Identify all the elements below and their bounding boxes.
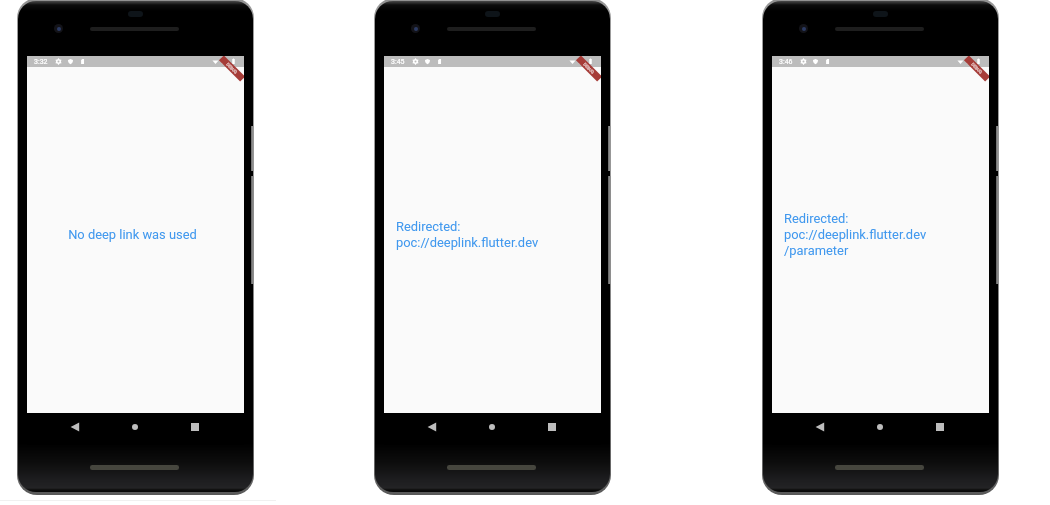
button[interactable]: Back — [798, 417, 842, 437]
button[interactable]: Home — [113, 417, 157, 437]
staticText: DEBUG — [225, 62, 239, 75]
staticText: 3:46 — [779, 58, 793, 66]
staticText: 3:32 — [34, 58, 48, 66]
staticText: DEBUG — [582, 62, 596, 75]
staticText: 3:45 — [391, 58, 405, 66]
button[interactable]: Home — [858, 417, 902, 437]
button[interactable]: Back — [410, 417, 454, 437]
button[interactable]: Recents — [918, 417, 962, 437]
staticText: Redirected: poc://deeplink.flutter.dev — [396, 219, 539, 250]
staticText: DEBUG — [970, 62, 984, 75]
staticText: No deep link was used — [68, 227, 197, 242]
button[interactable]: Home — [470, 417, 514, 437]
button[interactable]: Back — [53, 417, 97, 437]
button[interactable]: Recents — [173, 417, 217, 437]
button[interactable]: Recents — [530, 417, 574, 437]
staticText: Redirected: poc://deeplink.flutter.dev /… — [784, 211, 927, 258]
